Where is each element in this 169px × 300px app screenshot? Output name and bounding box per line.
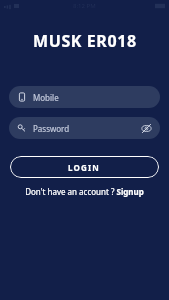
staticText: Don't have an account ? Signup bbox=[25, 186, 144, 197]
button[interactable]: Password bbox=[9, 117, 160, 139]
staticText: MUSK ER018 bbox=[33, 30, 137, 52]
button[interactable]: Don't have an account ? Signup bbox=[0, 186, 169, 197]
staticText: Password bbox=[33, 123, 70, 134]
button[interactable]: LOGIN bbox=[10, 156, 159, 178]
staticText: LOGIN bbox=[68, 162, 101, 173]
staticText: Mobile bbox=[33, 92, 59, 103]
button[interactable]: Mobile bbox=[9, 86, 160, 108]
button[interactable]: Show password bbox=[140, 122, 152, 134]
